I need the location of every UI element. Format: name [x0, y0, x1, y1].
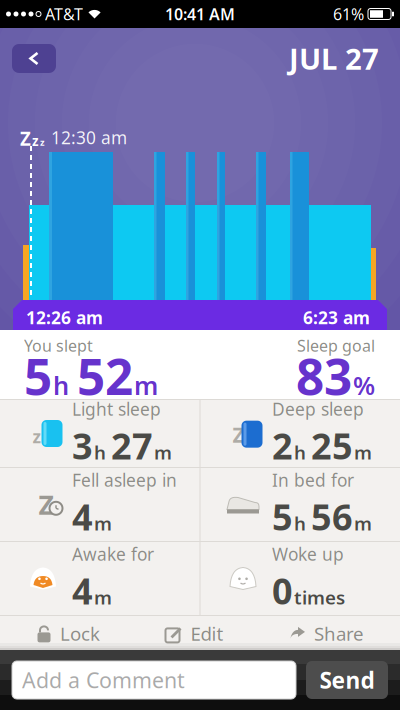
- staticText: 27: [111, 422, 153, 469]
- staticText: 0: [272, 567, 293, 614]
- staticText: m: [94, 511, 112, 536]
- staticText: m: [94, 585, 112, 610]
- staticText: AT&T: [45, 3, 83, 25]
- staticText: JUL 27: [289, 39, 379, 78]
- button[interactable]: Back: [12, 44, 56, 73]
- staticText: In bed for: [272, 469, 354, 492]
- staticText: m: [354, 511, 372, 536]
- staticText: z: [32, 425, 41, 448]
- staticText: Z: [38, 487, 53, 522]
- staticText: m: [354, 440, 372, 465]
- staticText: You slept: [24, 335, 93, 356]
- staticText: h: [294, 511, 306, 536]
- staticText: Awake for: [72, 543, 154, 566]
- staticText: Add a Comment: [22, 666, 185, 694]
- staticText: times: [294, 585, 345, 610]
- staticText: m: [134, 368, 158, 402]
- button[interactable]: Edit: [164, 621, 223, 646]
- button[interactable]: z: [0, 398, 200, 469]
- button[interactable]: Z: [200, 398, 400, 469]
- staticText: Send: [319, 665, 374, 695]
- staticText: 2: [272, 422, 293, 469]
- staticText: 6:23 am: [303, 306, 370, 329]
- button[interactable]: In bed for: [200, 469, 400, 540]
- staticText: 83: [296, 343, 352, 408]
- staticText: 3: [72, 422, 93, 469]
- staticText: Woke up: [272, 543, 344, 566]
- staticText: Lock: [60, 621, 100, 646]
- staticText: Deep sleep: [272, 398, 364, 421]
- staticText: z: [32, 132, 39, 150]
- staticText: 12:30 am: [46, 126, 127, 149]
- staticText: 56: [311, 493, 353, 540]
- staticText: Fell asleep in: [72, 469, 177, 492]
- button[interactable]: Share: [288, 621, 364, 646]
- button[interactable]: Lock: [36, 621, 100, 646]
- staticText: h: [94, 440, 106, 465]
- staticText: z: [40, 136, 45, 148]
- staticText: h: [294, 440, 306, 465]
- staticText: 52: [77, 343, 133, 408]
- staticText: 25: [311, 422, 353, 469]
- staticText: Edit: [190, 621, 223, 646]
- button[interactable]: Z: [0, 469, 200, 540]
- staticText: 61%: [333, 3, 364, 25]
- staticText: 4: [72, 567, 93, 614]
- staticText: %: [353, 368, 375, 402]
- staticText: m: [154, 440, 172, 465]
- staticText: 12:26 am: [26, 306, 103, 329]
- staticText: 5: [24, 343, 52, 408]
- staticText: Z: [20, 126, 31, 151]
- staticText: h: [53, 368, 69, 402]
- button[interactable]: Awake for: [0, 543, 200, 614]
- button[interactable]: Woke up: [200, 543, 400, 614]
- staticText: 5: [272, 493, 293, 540]
- staticText: Light sleep: [72, 398, 161, 421]
- staticText: Share: [314, 621, 364, 646]
- staticText: 4: [72, 493, 93, 540]
- button[interactable]: Add a Comment: [12, 661, 296, 699]
- staticText: Sleep goal: [297, 335, 375, 356]
- staticText: 10:41 AM: [165, 3, 235, 25]
- staticText: Z: [232, 420, 244, 449]
- button[interactable]: Send: [306, 661, 388, 699]
